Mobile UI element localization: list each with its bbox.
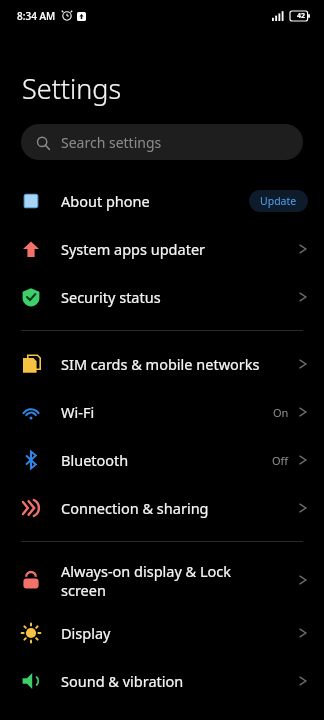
staticText: Off [272,453,289,468]
staticText: Wi-Fi [61,402,273,422]
button[interactable]: SIM cards & mobile networks [0,340,324,388]
button[interactable]: System apps updater [0,225,324,273]
button[interactable]: Always-on display & Lock screen [0,551,324,609]
staticText: Search settings [61,133,162,152]
button[interactable]: Search settings [21,124,303,160]
staticText: Bluetooth [61,450,272,470]
staticText: 8:34 AM [17,9,56,23]
staticText: System apps updater [61,239,298,259]
staticText: 42 [297,11,306,21]
button[interactable]: Security status [0,273,324,321]
staticText: Settings [22,70,122,107]
staticText: Always-on display & Lock screen [61,561,298,600]
staticText: About phone [61,191,249,211]
button[interactable]: Wi-Fi [0,388,324,436]
staticText: Display [61,623,298,643]
button[interactable]: Bluetooth [0,436,324,484]
staticText: Connection & sharing [61,498,298,518]
button[interactable]: Display [0,609,324,657]
staticText: Security status [61,287,298,307]
staticText: Update [260,194,297,208]
button[interactable]: Sound & vibration [0,657,324,705]
staticText: SIM cards & mobile networks [61,354,298,374]
button[interactable]: Connection & sharing [0,484,324,532]
button[interactable]: Update [249,190,308,212]
staticText: On [273,405,289,420]
staticText: Sound & vibration [61,671,298,691]
button[interactable]: About phone [0,177,324,225]
